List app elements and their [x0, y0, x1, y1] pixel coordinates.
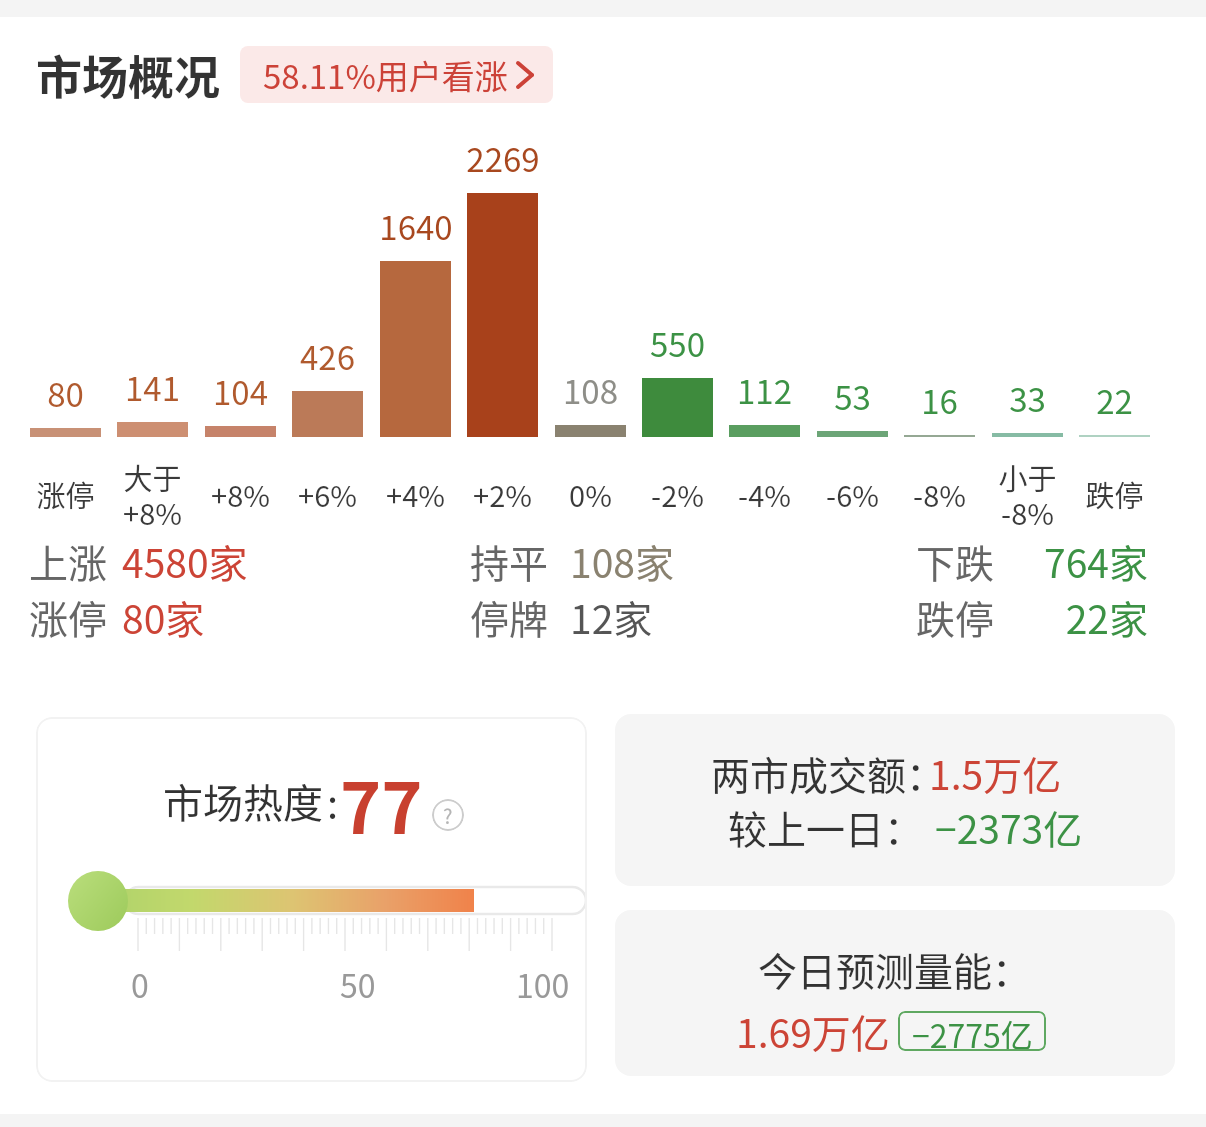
staticText: 上涨 — [29, 533, 108, 589]
staticText: 涨停 — [36, 473, 95, 515]
staticText: 550 — [650, 319, 705, 361]
staticText: 764家 — [1044, 533, 1148, 589]
staticText: 12家 — [570, 589, 653, 645]
staticText: 80家 — [122, 589, 205, 645]
staticText: 22家 — [1065, 589, 1148, 645]
staticText: 426 — [300, 332, 355, 374]
staticText: 1.69万亿 — [736, 1003, 890, 1059]
staticText: 小于 -8% — [998, 456, 1057, 533]
staticText: 50 — [340, 961, 376, 1007]
staticText: +8% — [211, 473, 270, 515]
staticText: 53 — [834, 372, 871, 414]
staticText: 80 — [47, 369, 84, 411]
staticText: 停牌 — [470, 589, 549, 645]
staticText: 持平 — [470, 533, 549, 589]
staticText: 1.5万亿 — [929, 745, 1062, 801]
staticText: 112 — [737, 366, 792, 408]
staticText: 16 — [921, 376, 958, 418]
staticText: -4% — [738, 473, 791, 515]
staticText: 22 — [1096, 376, 1133, 418]
staticText: 58.11%用户看涨 — [263, 51, 508, 99]
staticText: -8% — [913, 473, 966, 515]
staticText: 108家 — [570, 533, 674, 589]
staticText: 2269 — [466, 134, 540, 176]
staticText: 33 — [1009, 374, 1046, 416]
staticText: 77 — [340, 753, 423, 854]
staticText: 两市成交额： — [711, 745, 946, 801]
staticText: 下跌 — [916, 533, 995, 589]
staticText: −2775亿 — [912, 1011, 1033, 1051]
staticText: 市场热度 — [163, 772, 323, 830]
staticText: 141 — [125, 363, 180, 405]
staticText: +6% — [298, 473, 357, 515]
staticText: 大于 +8% — [123, 456, 182, 533]
staticText: −2373亿 — [935, 799, 1083, 855]
button[interactable]: 市场热度 — [36, 717, 587, 1082]
staticText: +4% — [386, 473, 445, 515]
staticText: +2% — [473, 473, 532, 515]
staticText: 跌停 — [916, 589, 995, 645]
staticText: 0% — [569, 473, 612, 515]
staticText: 104 — [213, 367, 268, 409]
staticText: 较上一日： — [728, 799, 924, 855]
staticText: 1640 — [379, 202, 453, 244]
staticText: : — [327, 772, 339, 830]
button[interactable]: 58.11%用户看涨 — [240, 46, 553, 103]
staticText: 涨停 — [29, 589, 108, 645]
staticText: 0 — [131, 961, 149, 1007]
staticText: -2% — [651, 473, 704, 515]
staticText: 跌停 — [1085, 473, 1144, 515]
staticText: 108 — [563, 366, 618, 408]
staticText: -6% — [826, 473, 879, 515]
button[interactable]: 两市成交额： — [615, 714, 1175, 886]
staticText: ? — [443, 801, 453, 830]
button[interactable]: 今日预测量能： — [615, 910, 1175, 1076]
staticText: 今日预测量能： — [758, 941, 1032, 997]
staticText: 市场概况 — [36, 41, 220, 108]
staticText: 4580家 — [122, 533, 248, 589]
button[interactable]: 帮助 — [432, 799, 464, 831]
staticText: 100 — [516, 961, 570, 1007]
